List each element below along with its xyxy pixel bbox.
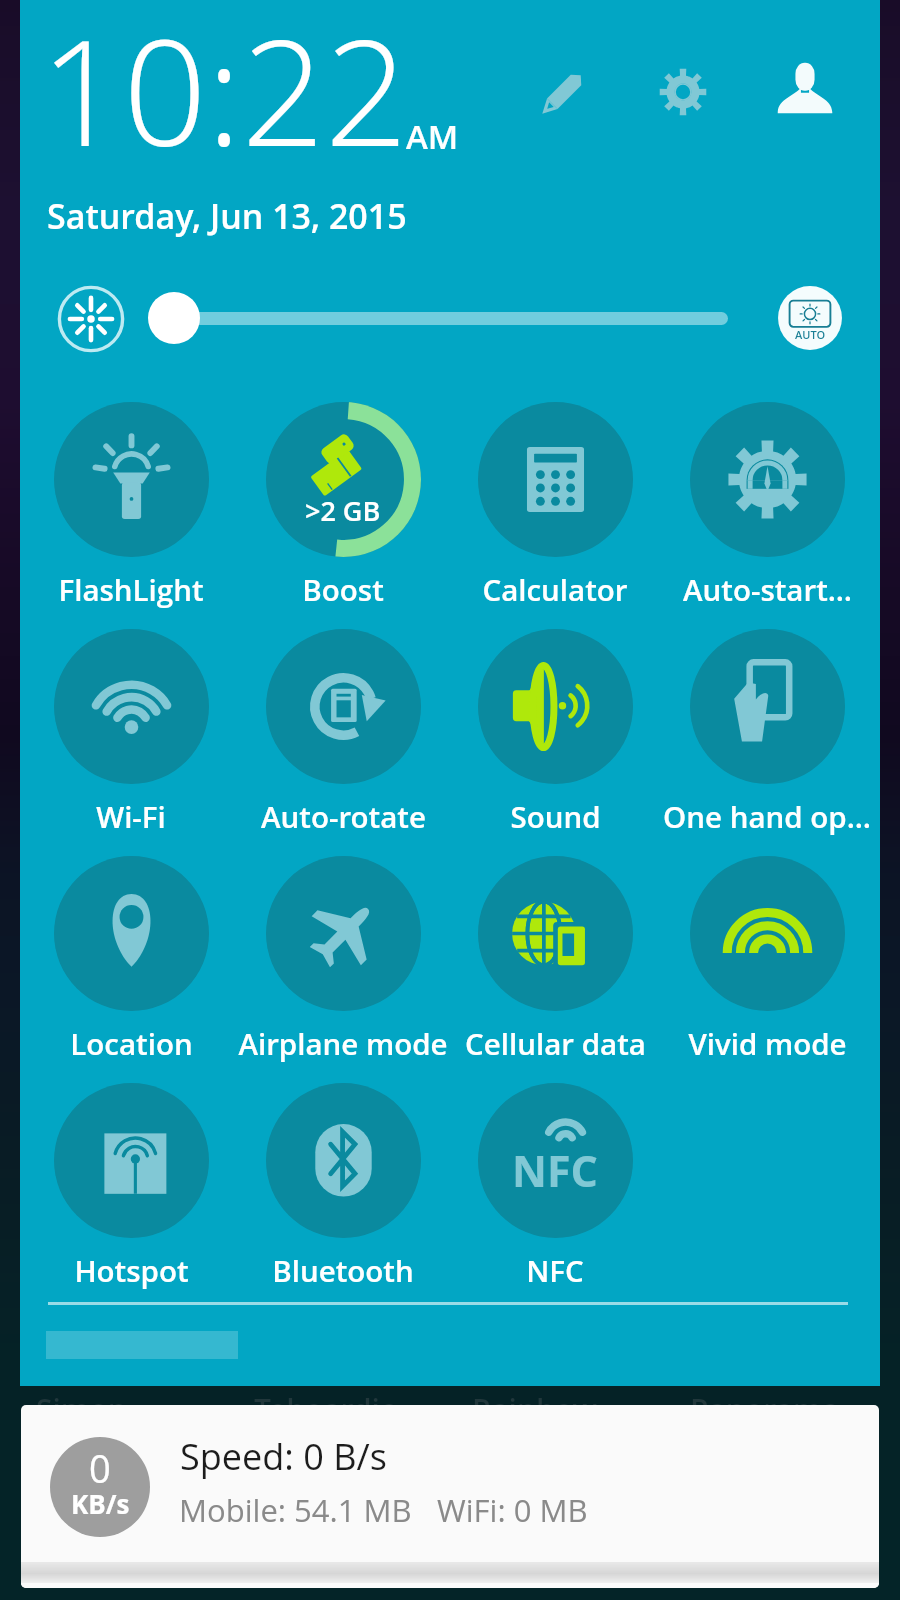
button[interactable] (478, 629, 633, 784)
staticText: NFC (526, 1250, 584, 1290)
button[interactable] (690, 856, 845, 1011)
staticText: Panorama (690, 1389, 840, 1430)
button[interactable]: Edit (525, 55, 601, 131)
button[interactable]: Settings (659, 68, 707, 116)
staticText: One hand op… (663, 796, 871, 836)
staticText: Auto-rotate (261, 796, 426, 836)
button[interactable] (54, 629, 209, 784)
button[interactable] (266, 1083, 421, 1238)
button[interactable] (690, 629, 845, 784)
staticText: Speed: 0 B/s (180, 1432, 387, 1481)
staticText: 10:22 (40, 0, 409, 189)
staticText: Hotspot (74, 1250, 189, 1290)
staticText: Boost (302, 569, 384, 609)
button[interactable] (690, 402, 845, 557)
staticText: FlashLight (58, 569, 204, 609)
button[interactable] (478, 856, 633, 1011)
staticText: Cellular data (465, 1023, 646, 1063)
button[interactable] (266, 402, 421, 557)
staticText: Simon Rahm (36, 1389, 216, 1430)
staticText: Location (70, 1023, 193, 1063)
staticText: 0 (89, 1442, 111, 1494)
staticText: KB/s (71, 1486, 130, 1521)
button[interactable] (54, 402, 209, 557)
staticText: AUTO (795, 327, 826, 342)
staticText: Auto-start… (683, 569, 852, 609)
staticText: Rainbow (472, 1389, 597, 1430)
staticText: Vivid mode (688, 1023, 847, 1063)
staticText: Teboardio (254, 1389, 399, 1430)
button[interactable]: Auto brightness (776, 284, 844, 352)
button[interactable] (478, 402, 633, 557)
staticText: >2 GB (305, 492, 381, 529)
button[interactable] (266, 856, 421, 1011)
button[interactable] (54, 856, 209, 1011)
button[interactable] (54, 1083, 209, 1238)
button[interactable]: User profile (776, 62, 834, 120)
button[interactable]: 0 (21, 1405, 879, 1588)
staticText: Sound (510, 796, 601, 836)
staticText: Saturday, Jun 13, 2015 (47, 193, 407, 239)
staticText: Calculator (482, 569, 628, 609)
staticText: Wi-Fi (96, 796, 166, 836)
staticText: WiFi: 0 MB (437, 1489, 588, 1531)
staticText: NFC (512, 1141, 598, 1200)
staticText: AM (406, 114, 459, 159)
button[interactable]: Brightness (57, 285, 125, 353)
staticText: Bluetooth (272, 1250, 414, 1290)
button[interactable] (478, 1083, 633, 1238)
staticText: Mobile: 54.1 MB (179, 1489, 412, 1531)
button[interactable] (266, 629, 421, 784)
staticText: Airplane mode (238, 1023, 448, 1063)
